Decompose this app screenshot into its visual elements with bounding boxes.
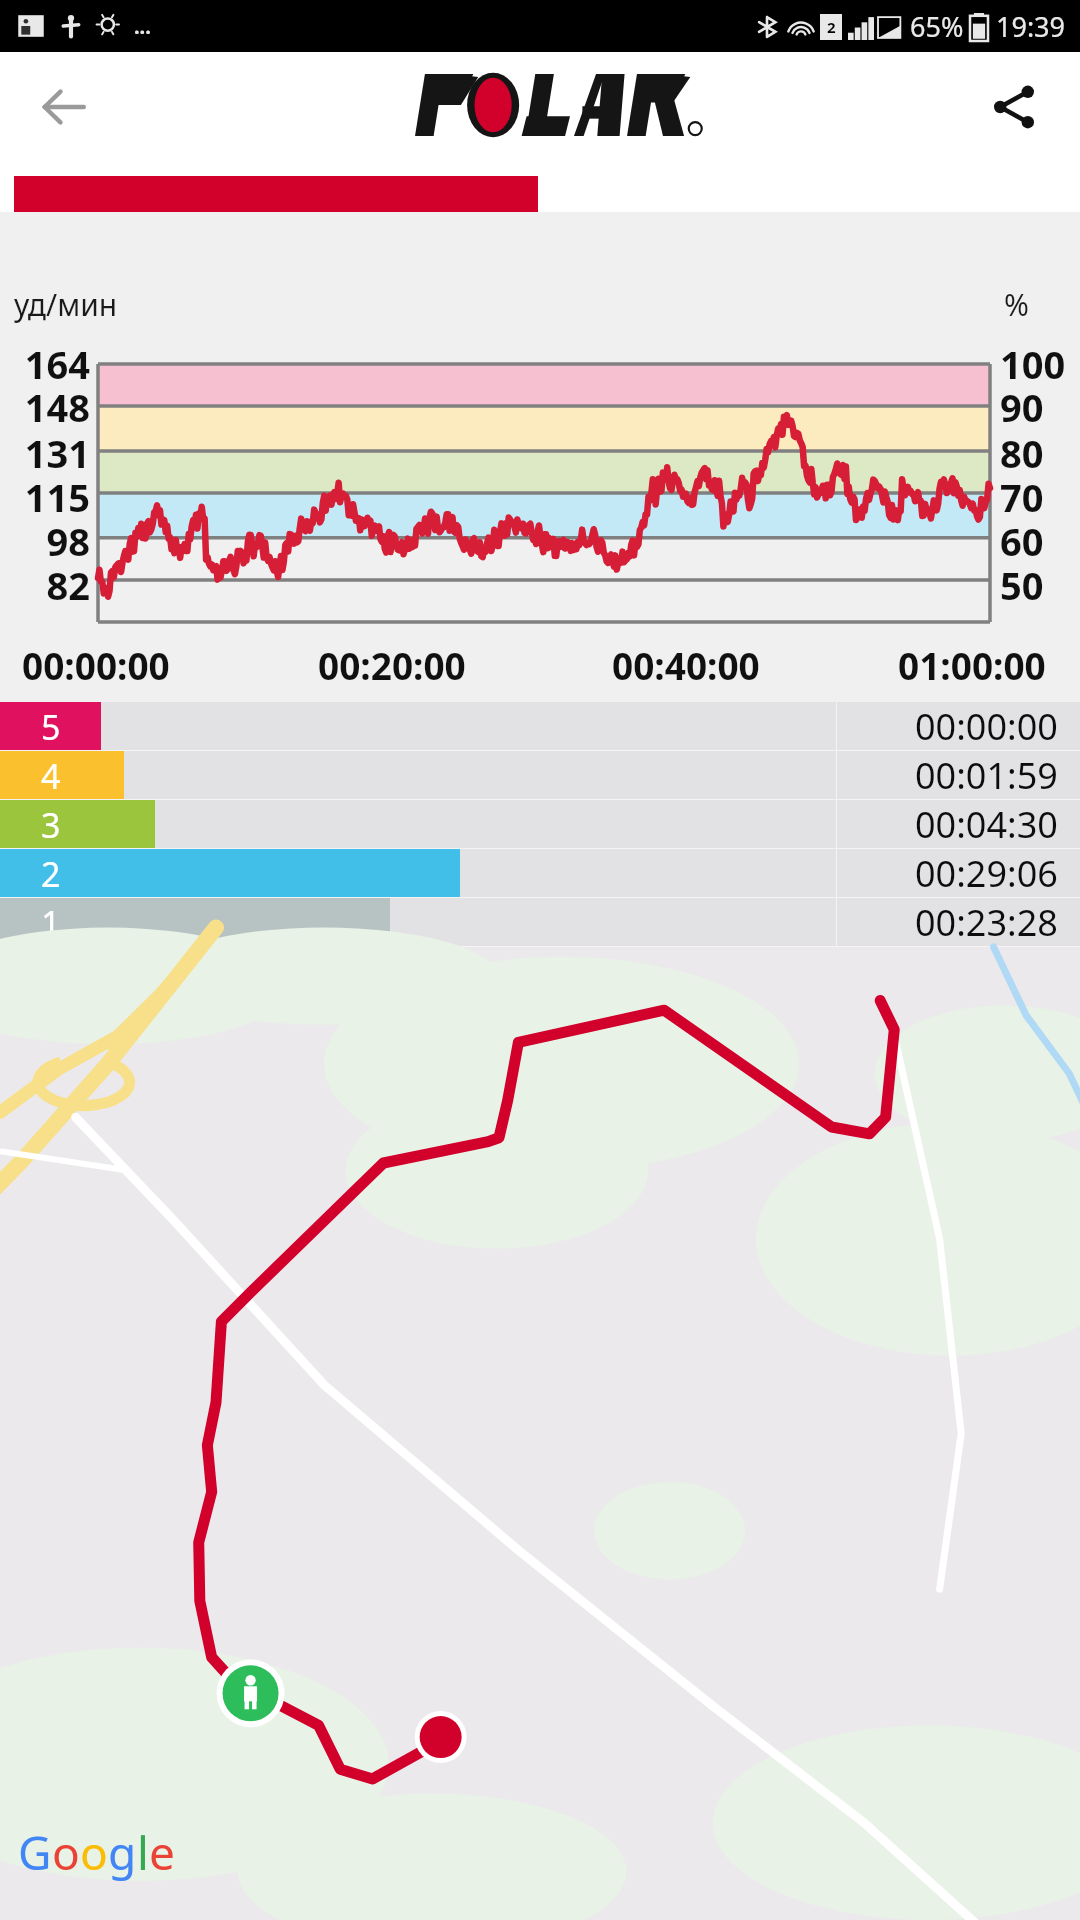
staticText: 00:20:00 (318, 640, 466, 690)
staticText: 80 (1000, 427, 1044, 479)
staticText: 5 (41, 704, 61, 750)
staticText: 00:01:59 (915, 751, 1058, 800)
staticText: l (137, 1821, 149, 1884)
staticText: 00:00:00 (22, 640, 170, 690)
staticText: 82 (12, 559, 90, 611)
staticText: 00:00:00 (915, 702, 1058, 751)
staticText: o (80, 1821, 108, 1884)
staticText: 00:23:28 (915, 898, 1058, 947)
staticText: 2 (41, 851, 61, 897)
button[interactable]: 1 (0, 898, 1080, 947)
staticText: e (149, 1821, 175, 1884)
staticText: 164 (12, 338, 90, 390)
staticText: уд/мин (14, 284, 118, 325)
button[interactable]: 2 (0, 849, 1080, 898)
staticText: 01:00:00 (898, 640, 1046, 690)
staticText: o (52, 1821, 80, 1884)
staticText: 70 (1000, 471, 1044, 523)
staticText: 19:39 (996, 8, 1066, 45)
staticText: ... (134, 13, 151, 40)
button[interactable]: 4 (0, 751, 1080, 800)
staticText: % (1004, 284, 1029, 325)
staticText: 2 (827, 17, 836, 37)
staticText: 98 (12, 515, 90, 567)
staticText: 115 (12, 471, 90, 523)
staticText: 1 (41, 900, 61, 946)
staticText: 3 (41, 802, 61, 848)
staticText: 131 (12, 427, 90, 479)
button[interactable]: Route map (0, 947, 1080, 1920)
staticText: 100 (1000, 338, 1066, 390)
button[interactable]: Back (28, 71, 100, 143)
staticText: 60 (1000, 515, 1044, 567)
staticText: 00:04:30 (915, 800, 1058, 849)
staticText: G (18, 1821, 52, 1884)
staticText: g (108, 1821, 137, 1884)
button[interactable]: 5 (0, 702, 1080, 751)
staticText: 148 (12, 381, 90, 433)
button[interactable]: Share (978, 71, 1050, 143)
staticText: 65% (910, 8, 964, 45)
button[interactable]: 3 (0, 800, 1080, 849)
staticText: 00:40:00 (612, 640, 760, 690)
staticText: 50 (1000, 559, 1044, 611)
staticText: 00:29:06 (915, 849, 1058, 898)
staticText: 90 (1000, 381, 1044, 433)
staticText: 4 (41, 753, 61, 799)
